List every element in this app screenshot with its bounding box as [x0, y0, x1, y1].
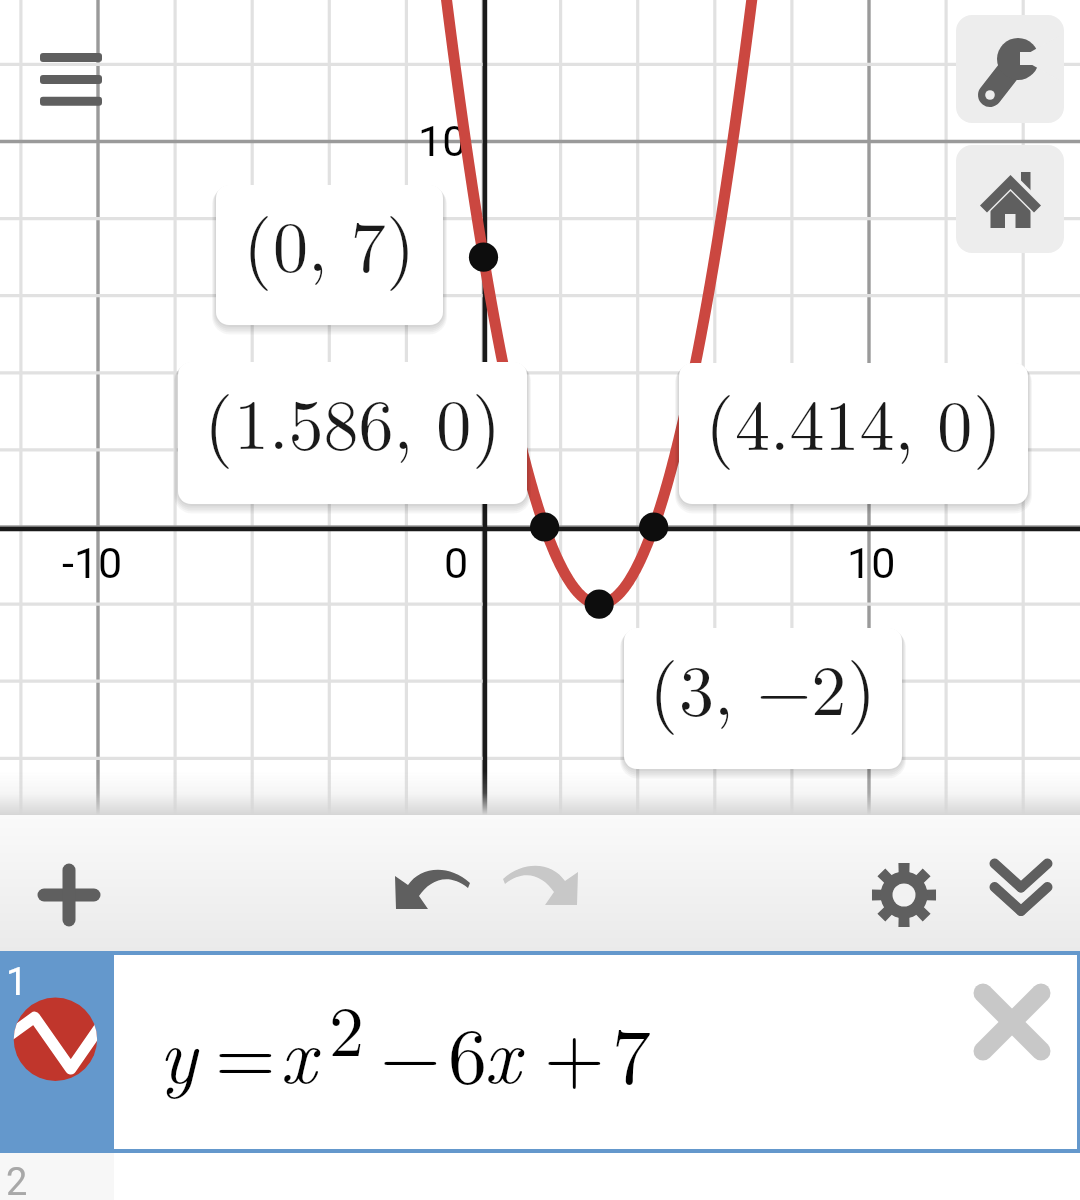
button[interactable]: Expression 1 style: [0, 951, 114, 1153]
staticText: 2: [6, 1160, 28, 1200]
staticText: 4.414, 0: [735, 371, 973, 470]
button[interactable]: 2: [0, 1153, 114, 1200]
button[interactable]: Home: [956, 145, 1064, 253]
staticText: 3, −2: [679, 636, 847, 735]
staticText: ): [973, 366, 1003, 472]
staticText: 10: [847, 538, 896, 588]
staticText: −: [380, 995, 441, 1106]
staticText: 7: [612, 995, 652, 1106]
staticText: =: [215, 995, 276, 1106]
staticText: ): [386, 187, 416, 293]
button[interactable]: Redo: [497, 841, 585, 929]
staticText: 0, 7: [273, 192, 386, 291]
staticText: x: [280, 995, 317, 1105]
button[interactable]: Tools: [956, 15, 1064, 123]
staticText: 6: [448, 995, 488, 1106]
staticText: +: [544, 995, 605, 1106]
staticText: 1.586, 0: [234, 370, 472, 469]
button[interactable]: Settings: [860, 851, 948, 939]
staticText: 10: [418, 116, 467, 166]
staticText: y: [159, 995, 197, 1105]
button[interactable]: Undo: [388, 845, 476, 933]
staticText: (: [204, 365, 234, 471]
button[interactable]: Delete expression 1: [959, 969, 1065, 1075]
button[interactable]: Edit expression 1: [114, 955, 1077, 1149]
staticText: (: [649, 631, 679, 737]
button[interactable]: Menu: [28, 38, 114, 110]
staticText: -10: [62, 538, 123, 588]
staticText: ): [847, 631, 877, 737]
staticText: x: [484, 995, 521, 1105]
staticText: (: [243, 187, 273, 293]
staticText: (: [705, 366, 735, 472]
button[interactable]: Collapse: [977, 841, 1065, 929]
staticText: 0: [444, 538, 469, 588]
staticText: 2: [329, 977, 364, 1076]
staticText: ): [472, 365, 502, 471]
button[interactable]: Add: [25, 851, 113, 939]
staticText: 1: [6, 960, 28, 1005]
